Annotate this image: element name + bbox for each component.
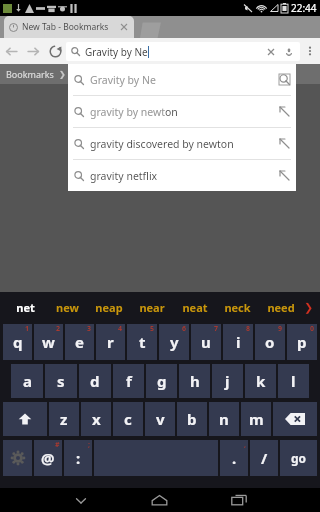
button[interactable]: o: [255, 324, 285, 360]
button[interactable]: .: [220, 440, 248, 476]
button[interactable]: neap: [88, 292, 130, 322]
button[interactable]: neat: [173, 292, 216, 322]
button[interactable]: new: [46, 292, 88, 322]
staticText: new: [56, 300, 79, 315]
button[interactable]: gravity by newt: [68, 96, 296, 127]
button[interactable]: g: [146, 364, 177, 398]
staticText: d: [90, 371, 100, 391]
button[interactable]: f: [113, 364, 144, 398]
button[interactable]: Forward: [22, 38, 44, 64]
button[interactable]: Edit query: [279, 138, 290, 149]
button[interactable]: /: [250, 440, 278, 476]
staticText: Gravity by Ne: [90, 73, 156, 87]
staticText: s: [57, 371, 65, 391]
staticText: ❯: [59, 70, 66, 79]
button[interactable]: m: [241, 402, 271, 436]
staticText: #: [55, 440, 60, 450]
button[interactable]: Edit query: [279, 106, 290, 117]
staticText: go: [291, 450, 307, 466]
button[interactable]: gravity discovered by newton: [68, 128, 296, 159]
staticText: ;: [88, 440, 90, 450]
staticText: r: [107, 332, 114, 352]
staticText: e: [75, 332, 84, 352]
button[interactable]: y: [159, 324, 189, 360]
staticText: near: [139, 300, 165, 315]
staticText: .: [232, 448, 237, 468]
button[interactable]: b: [177, 402, 207, 436]
button[interactable]: h: [179, 364, 210, 398]
staticText: ,: [244, 440, 246, 450]
staticText: q: [13, 332, 23, 352]
staticText: c: [124, 409, 132, 429]
staticText: 7: [214, 324, 219, 334]
button[interactable]: Settings: [3, 440, 32, 476]
staticText: 5: [150, 324, 155, 334]
button[interactable]: Voice search: [283, 46, 295, 58]
staticText: y: [170, 332, 179, 352]
button[interactable]: u: [191, 324, 221, 360]
staticText: a: [23, 371, 32, 391]
staticText: k: [256, 371, 266, 391]
button[interactable]: a: [11, 364, 43, 398]
staticText: neap: [95, 300, 123, 315]
staticText: p: [297, 332, 307, 352]
button[interactable]: net: [4, 292, 46, 322]
button[interactable]: New Tab - Bookmarks: [4, 16, 134, 38]
button[interactable]: q: [3, 324, 32, 360]
button[interactable]: x: [81, 402, 111, 436]
button[interactable]: e: [65, 324, 94, 360]
button[interactable]: Recent apps: [213, 488, 264, 512]
staticText: ❯: [304, 301, 314, 314]
button[interactable]: go: [280, 440, 317, 476]
staticText: :: [76, 448, 81, 468]
staticText: 6: [182, 324, 187, 334]
button[interactable]: Shift: [3, 402, 47, 436]
button[interactable]: z: [49, 402, 79, 436]
staticText: 1: [25, 324, 30, 334]
button[interactable]: Home: [134, 488, 185, 512]
button[interactable]: s: [45, 364, 77, 398]
button[interactable]: need: [259, 292, 302, 322]
button[interactable]: n: [209, 402, 239, 436]
button[interactable]: t: [127, 324, 157, 360]
button[interactable]: Reload: [44, 38, 66, 64]
staticText: gravity discovered by newton: [90, 137, 234, 151]
button[interactable]: v: [145, 402, 175, 436]
button[interactable]: Back: [0, 38, 22, 64]
button[interactable]: l: [278, 364, 309, 398]
button[interactable]: Search this: [279, 74, 290, 85]
button[interactable]: @: [34, 440, 62, 476]
button[interactable]: i: [223, 324, 253, 360]
staticText: 4: [118, 324, 123, 334]
button[interactable]: near: [130, 292, 173, 322]
staticText: f: [126, 371, 132, 391]
staticText: j: [225, 371, 230, 391]
button[interactable]: neck: [216, 292, 259, 322]
button[interactable]: j: [212, 364, 243, 398]
button[interactable]: Gravity by Ne: [68, 64, 296, 95]
button[interactable]: Close tab: [119, 22, 129, 32]
button[interactable]: gravity netflix: [68, 160, 296, 191]
staticText: u: [201, 332, 211, 352]
button[interactable]: r: [96, 324, 125, 360]
staticText: 3: [87, 324, 92, 334]
button[interactable]: Backspace: [273, 402, 317, 436]
button[interactable]: Tab: [140, 16, 162, 38]
button[interactable]: Hide keyboard: [55, 488, 106, 512]
staticText: neck: [224, 300, 251, 315]
button[interactable]: :: [64, 440, 92, 476]
button[interactable]: Clear: [265, 46, 277, 58]
staticText: v: [156, 409, 165, 429]
button[interactable]: k: [245, 364, 276, 398]
button[interactable]: Gravity by Ne: [66, 42, 300, 61]
staticText: E: [71, 68, 77, 80]
button[interactable]: More options: [300, 38, 320, 64]
button[interactable]: w: [34, 324, 63, 360]
button[interactable]: Edit query: [279, 170, 290, 181]
button[interactable]: d: [79, 364, 111, 398]
button[interactable]: More suggestions: [302, 292, 316, 322]
button[interactable]: c: [113, 402, 143, 436]
button[interactable]: p: [287, 324, 317, 360]
staticText: g: [157, 371, 167, 391]
